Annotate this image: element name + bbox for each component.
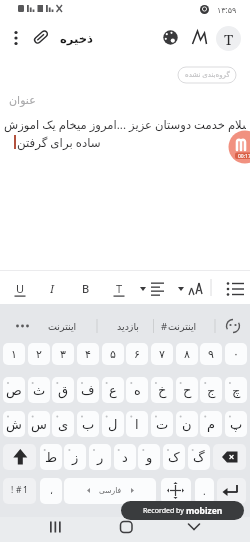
staticText: گ	[193, 450, 205, 465]
button[interactable]: ک	[163, 444, 185, 470]
button[interactable]: ف	[77, 377, 99, 403]
button[interactable]	[10, 315, 36, 337]
button[interactable]: ۳	[52, 343, 74, 365]
button[interactable]: I	[45, 281, 59, 295]
button[interactable]: ط	[40, 444, 62, 470]
button[interactable]	[3, 478, 36, 504]
button[interactable]: ش	[3, 411, 25, 437]
button[interactable]: ۱	[3, 343, 25, 365]
staticText: U	[16, 281, 25, 295]
staticText: ب	[82, 417, 95, 432]
staticText: ۸	[184, 348, 190, 361]
staticText: .	[203, 484, 206, 498]
staticText: ۶	[134, 348, 140, 361]
button[interactable]: چ	[225, 377, 247, 403]
staticText: پ	[230, 417, 243, 432]
button[interactable]: #	[160, 317, 169, 335]
button[interactable]	[8, 29, 24, 47]
button[interactable]: م	[200, 411, 222, 437]
button[interactable]: خ	[151, 377, 173, 403]
button[interactable]: T	[112, 281, 126, 295]
button[interactable]: ۲	[28, 343, 50, 365]
staticText: #	[161, 320, 168, 333]
staticText: ۲	[36, 348, 42, 361]
button[interactable]: س	[28, 411, 50, 437]
button[interactable]: ج	[200, 377, 222, 403]
staticText: #	[16, 484, 22, 496]
button[interactable]: ت	[151, 411, 173, 437]
button[interactable]: پ	[225, 411, 247, 437]
staticText: ذخیره	[60, 32, 93, 45]
button[interactable]	[161, 478, 191, 504]
staticText: ۳	[60, 348, 66, 361]
button[interactable]: ع	[102, 377, 124, 403]
button[interactable]: ز	[64, 444, 86, 470]
staticText: ن	[182, 417, 192, 432]
button[interactable]: د	[114, 444, 136, 470]
button[interactable]: ص	[3, 377, 25, 403]
button[interactable]: ۴	[77, 343, 99, 365]
button[interactable]: .	[195, 478, 214, 504]
staticText: ل	[108, 417, 118, 432]
button[interactable]	[3, 444, 36, 470]
button[interactable]: ۹	[200, 343, 222, 365]
button[interactable]: ن	[176, 411, 198, 437]
button[interactable]: T	[216, 26, 241, 51]
button[interactable]	[138, 280, 168, 297]
button[interactable]: ا	[126, 411, 148, 437]
button[interactable]: ۰	[225, 343, 247, 365]
button[interactable]	[110, 517, 144, 542]
button[interactable]	[64, 478, 156, 504]
button[interactable]: ،	[40, 478, 62, 504]
button[interactable]	[178, 517, 212, 542]
staticText: ۱	[11, 348, 17, 361]
staticText: 00:17	[238, 153, 250, 160]
button[interactable]: ر	[89, 444, 111, 470]
button[interactable]: گ	[188, 444, 210, 470]
button[interactable]: Recorded by	[121, 501, 244, 520]
button[interactable]: بازدید	[106, 317, 150, 335]
button[interactable]	[224, 280, 246, 297]
button[interactable]	[217, 478, 246, 504]
staticText: ص	[6, 383, 22, 398]
button[interactable]: گروه‌بندی نشده	[178, 67, 236, 83]
staticText: ۰	[233, 348, 239, 361]
button[interactable]	[213, 444, 246, 470]
button[interactable]	[190, 28, 209, 47]
staticText: بازدید	[117, 321, 139, 332]
button[interactable]	[176, 280, 202, 297]
button[interactable]: B	[79, 281, 93, 295]
button[interactable]: اینترنت	[40, 317, 84, 335]
button[interactable]	[161, 28, 180, 47]
button[interactable]	[40, 517, 74, 542]
button[interactable]: U	[13, 281, 27, 295]
button[interactable]: ب	[77, 411, 99, 437]
staticText: ا	[135, 417, 139, 432]
button[interactable]: ق	[52, 377, 74, 403]
button[interactable]: و	[138, 444, 160, 470]
staticText: و	[146, 450, 153, 465]
staticText: سلام خدمت دوستان عزیز ...امروز میخام یک …	[4, 117, 246, 133]
button[interactable]: ۵	[102, 343, 124, 365]
button[interactable]: ح	[176, 377, 198, 403]
staticText: د	[122, 450, 128, 465]
button[interactable]: اینترنت	[168, 317, 208, 335]
button[interactable]: ث	[28, 377, 50, 403]
staticText: ش	[6, 417, 22, 432]
button[interactable]	[32, 29, 50, 47]
button[interactable]	[220, 315, 244, 337]
staticText: ک	[168, 450, 180, 465]
button[interactable]: ۶	[126, 343, 148, 365]
staticText: عنوان	[9, 94, 36, 107]
staticText: چ	[232, 383, 241, 398]
staticText: ج	[207, 383, 216, 398]
button[interactable]: ه	[126, 377, 148, 403]
staticText: B	[82, 281, 90, 295]
button[interactable]: ی	[52, 411, 74, 437]
button[interactable]: ۷	[151, 343, 173, 365]
button[interactable]: ل	[102, 411, 124, 437]
button[interactable]: ۸	[176, 343, 198, 365]
staticText: I	[50, 281, 55, 295]
button[interactable]: ذخیره	[58, 29, 94, 47]
staticText: ث	[33, 383, 46, 398]
